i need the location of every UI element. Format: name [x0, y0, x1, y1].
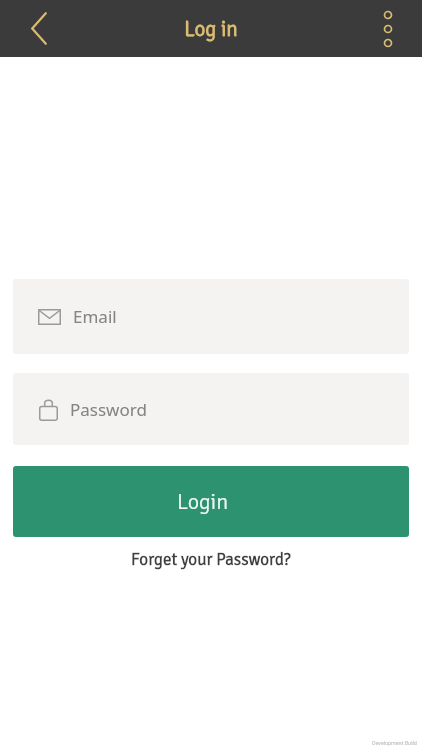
- button[interactable]: [354, 0, 422, 57]
- staticText: Development Build: [372, 740, 417, 747]
- staticText: Forget your Password?: [131, 549, 291, 570]
- staticText: Log in: [184, 16, 238, 42]
- button[interactable]: [0, 0, 78, 57]
- button[interactable]: Login: [13, 466, 409, 537]
- button[interactable]: Forget your Password?: [131, 549, 291, 570]
- button[interactable]: Password: [13, 373, 409, 445]
- staticText: Password: [70, 398, 147, 421]
- staticText: Email: [73, 305, 117, 328]
- button[interactable]: Email: [13, 279, 409, 354]
- staticText: Login: [177, 488, 229, 515]
